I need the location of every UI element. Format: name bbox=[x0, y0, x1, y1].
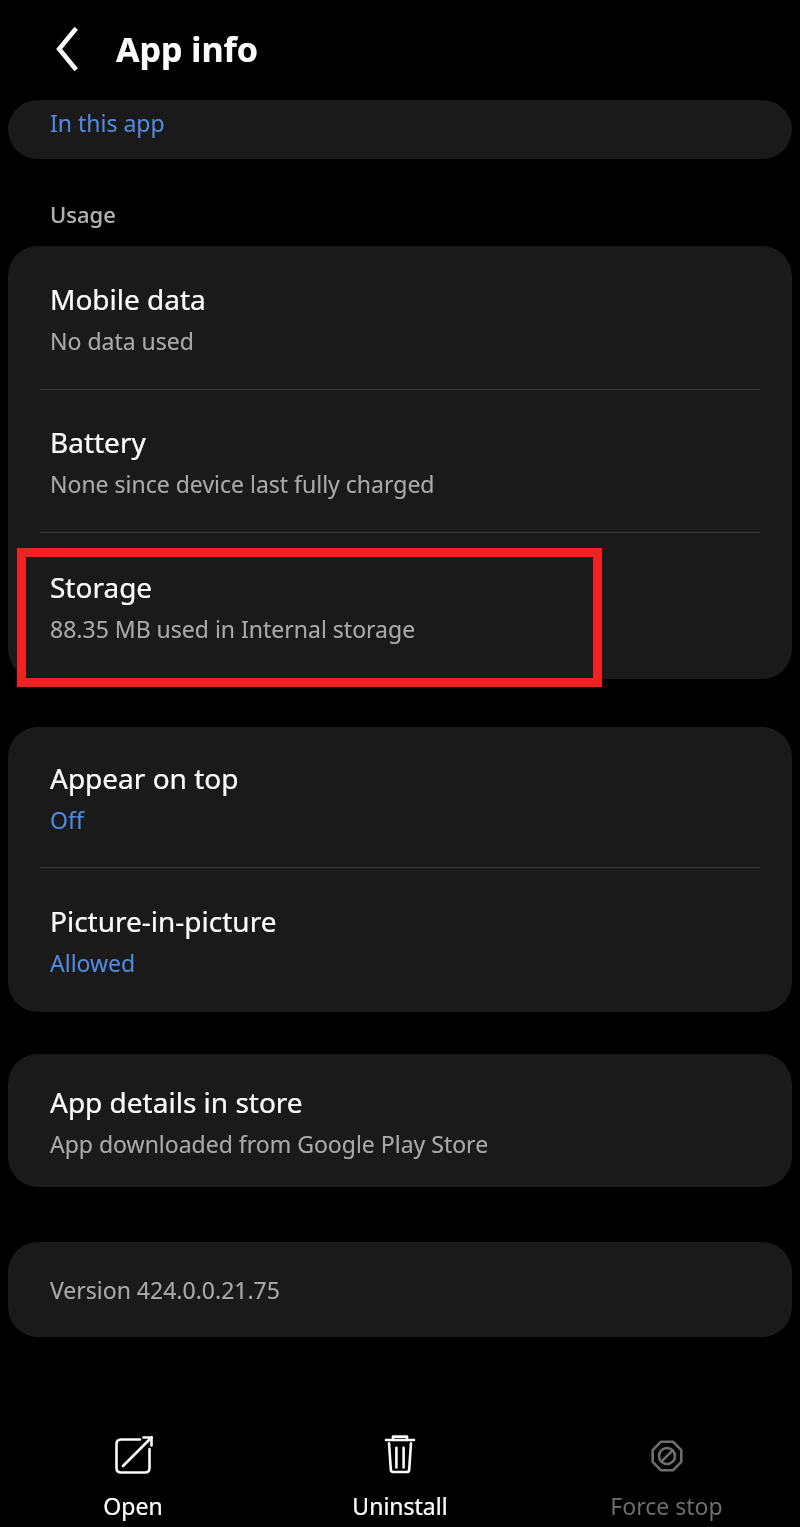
button[interactable]: Storage bbox=[8, 533, 792, 679]
button[interactable]: Force stop bbox=[533, 1400, 800, 1521]
staticText: No data used bbox=[50, 325, 194, 356]
button[interactable]: Open bbox=[0, 1400, 266, 1521]
button[interactable]: App details in store bbox=[8, 1054, 792, 1187]
staticText: Appear on top bbox=[50, 759, 239, 797]
staticText: Storage bbox=[50, 568, 153, 606]
staticText: Force stop bbox=[610, 1490, 723, 1521]
staticText: Picture-in-picture bbox=[50, 902, 277, 940]
staticText: Allowed bbox=[50, 947, 136, 978]
staticText: Mobile data bbox=[50, 280, 206, 318]
staticText: None since device last fully charged bbox=[50, 468, 435, 499]
button[interactable]: Back bbox=[36, 18, 98, 80]
staticText: App details in store bbox=[50, 1083, 303, 1121]
staticText: Off bbox=[50, 804, 84, 835]
staticText: Version 424.0.0.21.75 bbox=[50, 1274, 280, 1305]
staticText: Usage bbox=[50, 199, 116, 229]
button[interactable]: Battery bbox=[8, 390, 792, 532]
button[interactable]: Version 424.0.0.21.75 bbox=[8, 1242, 792, 1337]
button[interactable]: Picture-in-picture bbox=[8, 868, 792, 1012]
button[interactable]: Uninstall bbox=[266, 1400, 533, 1521]
staticText: Battery bbox=[50, 423, 146, 461]
button[interactable]: In this app bbox=[8, 100, 792, 159]
staticText: In this app bbox=[50, 107, 165, 138]
staticText: App downloaded from Google Play Store bbox=[50, 1128, 489, 1159]
staticText: Open bbox=[103, 1490, 163, 1521]
staticText: App info bbox=[116, 26, 259, 72]
staticText: 88.35 MB used in Internal storage bbox=[50, 613, 416, 644]
button[interactable]: Mobile data bbox=[8, 246, 792, 389]
button[interactable]: Appear on top bbox=[8, 727, 792, 867]
staticText: Uninstall bbox=[352, 1490, 448, 1521]
